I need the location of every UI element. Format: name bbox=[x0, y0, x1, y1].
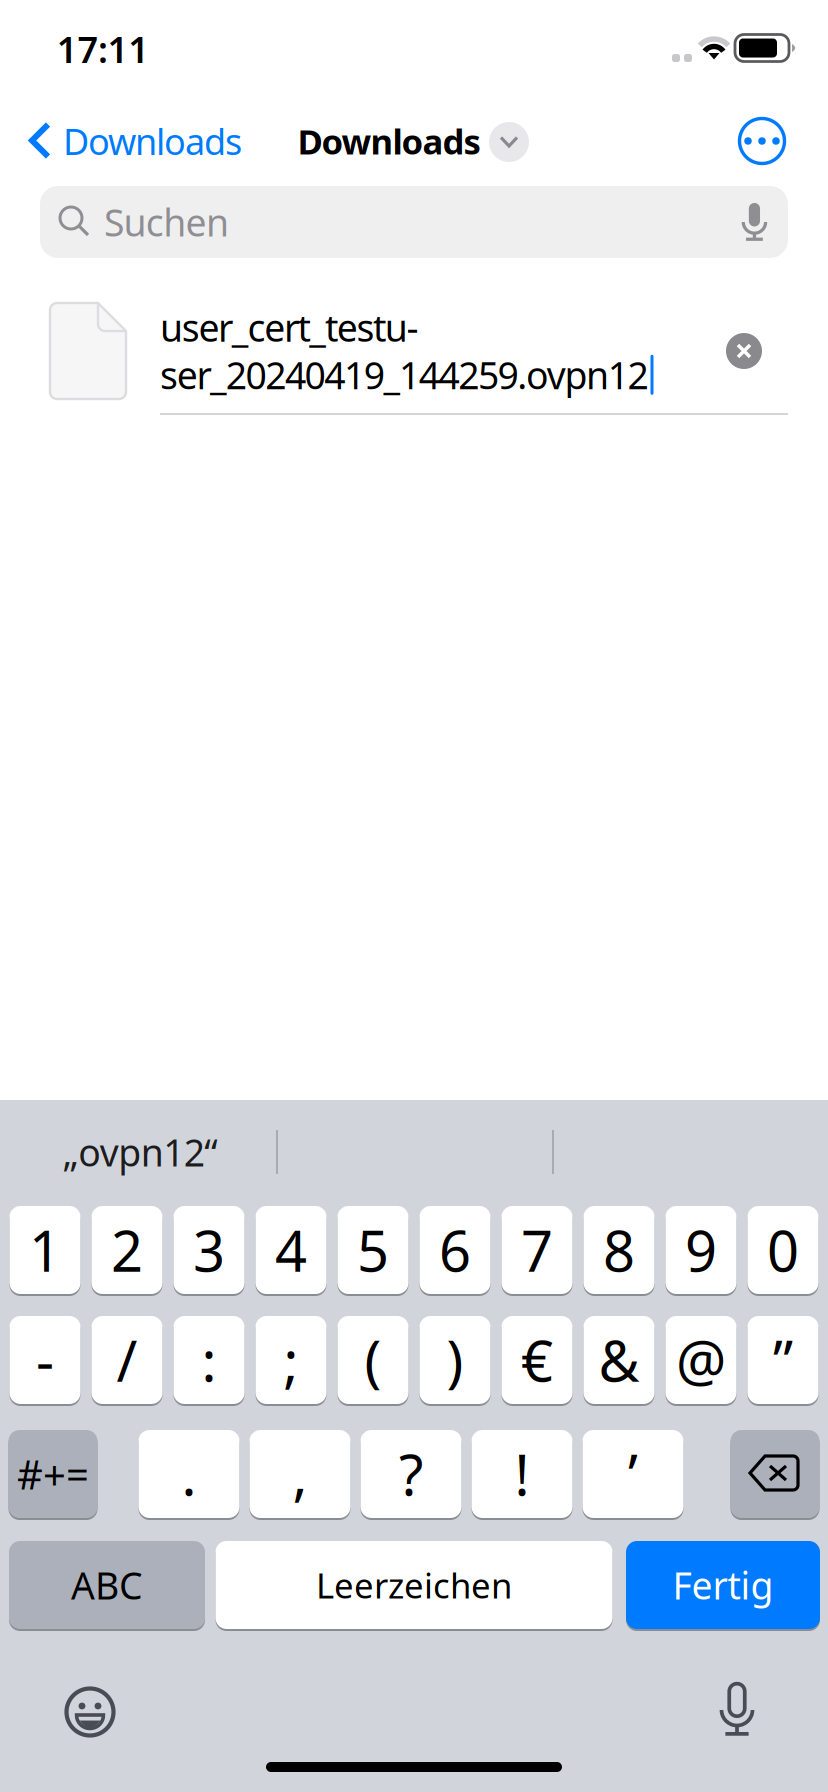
button[interactable]: Dictation bbox=[699, 1672, 775, 1748]
button[interactable]: : bbox=[173, 1316, 244, 1404]
staticText: Fertig bbox=[672, 1560, 773, 1610]
staticText: 0 bbox=[767, 1213, 799, 1287]
staticText: 4 bbox=[275, 1213, 307, 1287]
button[interactable]: 4 bbox=[255, 1206, 326, 1294]
button[interactable]: @ bbox=[665, 1316, 736, 1404]
button[interactable]: Clear text bbox=[714, 321, 774, 381]
staticText: 17:11 bbox=[57, 25, 149, 73]
staticText: 8 bbox=[603, 1213, 635, 1287]
button[interactable]: Browse options bbox=[485, 118, 533, 166]
staticText: „ovpn12“ bbox=[63, 1127, 217, 1177]
staticText: 2 bbox=[111, 1213, 143, 1287]
staticText: ser_20240419_144259.ovpn12 bbox=[160, 350, 648, 400]
button[interactable]: ” bbox=[747, 1316, 818, 1404]
button[interactable]: 9 bbox=[665, 1206, 736, 1294]
staticText: user_cert_testu- bbox=[160, 302, 418, 352]
button[interactable]: 2 bbox=[91, 1206, 162, 1294]
staticText: - bbox=[36, 1323, 54, 1397]
button[interactable]: 0 bbox=[747, 1206, 818, 1294]
staticText: Leerzeichen bbox=[316, 1562, 512, 1608]
button[interactable]: ? bbox=[360, 1430, 461, 1518]
button[interactable]: ’ bbox=[582, 1430, 683, 1518]
button[interactable]: #+= bbox=[8, 1430, 97, 1518]
staticText: ? bbox=[399, 1437, 423, 1511]
button[interactable]: , bbox=[249, 1430, 350, 1518]
button[interactable]: ; bbox=[255, 1316, 326, 1404]
staticText: 6 bbox=[439, 1213, 471, 1287]
staticText: #+= bbox=[17, 1447, 89, 1500]
button[interactable]: 3 bbox=[173, 1206, 244, 1294]
staticText: ” bbox=[773, 1323, 793, 1397]
staticText: . bbox=[181, 1437, 196, 1511]
button[interactable]: 5 bbox=[337, 1206, 408, 1294]
staticText: : bbox=[201, 1323, 216, 1397]
staticText: ! bbox=[514, 1437, 529, 1511]
button[interactable]: ABC bbox=[9, 1541, 205, 1629]
button[interactable]: / bbox=[91, 1316, 162, 1404]
staticText: Downloads bbox=[63, 117, 242, 165]
staticText: 3 bbox=[193, 1213, 225, 1287]
button[interactable]: 8 bbox=[583, 1206, 654, 1294]
button[interactable]: ( bbox=[337, 1316, 408, 1404]
staticText: ’ bbox=[628, 1437, 638, 1511]
button[interactable]: - bbox=[9, 1316, 80, 1404]
staticText: 9 bbox=[685, 1213, 717, 1287]
staticText: ( bbox=[364, 1323, 381, 1397]
button[interactable]: Suchen bbox=[40, 186, 788, 258]
button[interactable]: & bbox=[583, 1316, 654, 1404]
staticText: , bbox=[292, 1437, 307, 1511]
button[interactable]: 7 bbox=[501, 1206, 572, 1294]
button[interactable]: Leerzeichen bbox=[215, 1541, 612, 1629]
button[interactable]: Fertig bbox=[626, 1541, 820, 1629]
staticText: Suchen bbox=[104, 197, 229, 247]
staticText: 7 bbox=[521, 1213, 553, 1287]
staticText: @ bbox=[676, 1323, 726, 1397]
staticText: 5 bbox=[357, 1213, 389, 1287]
button[interactable]: . bbox=[138, 1430, 239, 1518]
button[interactable]: Emoji bbox=[52, 1674, 128, 1750]
button[interactable]: ! bbox=[471, 1430, 572, 1518]
button[interactable]: 6 bbox=[419, 1206, 490, 1294]
staticText: ; bbox=[283, 1323, 298, 1397]
staticText: ABC bbox=[71, 1560, 143, 1610]
button[interactable]: ) bbox=[419, 1316, 490, 1404]
button[interactable]: Delete bbox=[730, 1430, 819, 1518]
button[interactable]: € bbox=[501, 1316, 572, 1404]
staticText: € bbox=[521, 1323, 553, 1397]
button[interactable]: Downloads bbox=[28, 105, 280, 177]
staticText: 1 bbox=[29, 1213, 61, 1287]
button[interactable]: More bbox=[730, 109, 794, 173]
staticText: / bbox=[116, 1323, 137, 1397]
staticText: ) bbox=[446, 1323, 463, 1397]
staticText: Downloads bbox=[297, 118, 480, 164]
button[interactable]: 1 bbox=[9, 1206, 80, 1294]
staticText: & bbox=[598, 1323, 639, 1397]
